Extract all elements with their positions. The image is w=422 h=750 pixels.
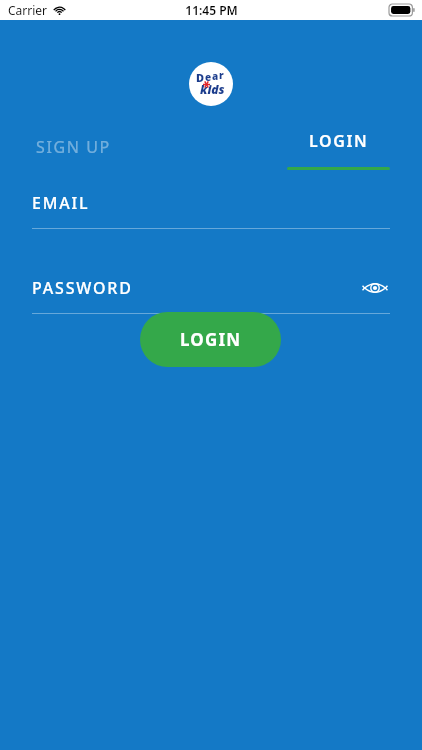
button[interactable]: LOGIN [287, 124, 390, 170]
staticText: kids [200, 81, 225, 97]
button[interactable]: EMAIL [32, 188, 390, 218]
staticText: LOGIN [309, 130, 369, 152]
staticText: a [212, 69, 219, 83]
button[interactable]: SIGN UP [32, 130, 115, 164]
staticText: EMAIL [32, 192, 90, 214]
staticText: D [196, 70, 205, 85]
staticText: r [219, 68, 224, 82]
staticText: 11:45 PM [185, 2, 238, 18]
staticText: e [205, 70, 212, 84]
button[interactable]: LOGIN [140, 312, 281, 367]
staticText: SIGN UP [36, 136, 111, 158]
staticText: LOGIN [180, 328, 242, 351]
staticText: PASSWORD [32, 277, 133, 299]
button[interactable]: Show password [360, 273, 390, 303]
staticText: Carrier [8, 2, 48, 18]
button[interactable]: PASSWORD [32, 273, 390, 303]
